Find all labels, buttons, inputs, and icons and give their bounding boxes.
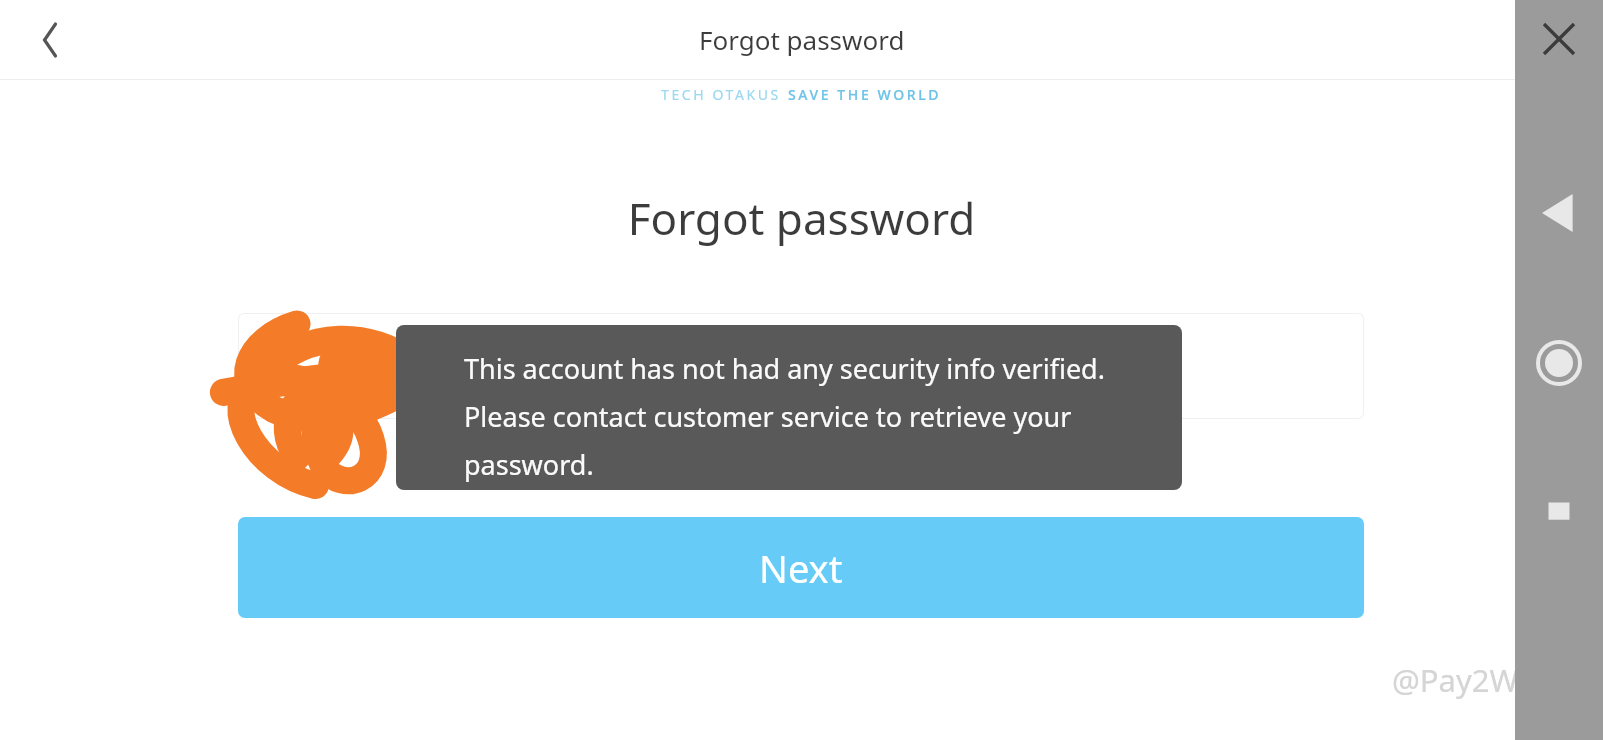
button[interactable]: Recent apps xyxy=(1528,482,1590,544)
staticText: Forgot password xyxy=(0,188,1603,248)
button[interactable]: Home xyxy=(1528,332,1590,394)
button[interactable]: Close xyxy=(1528,8,1590,70)
staticText: TECH OTAKUS xyxy=(661,85,788,104)
button[interactable]: Next xyxy=(238,517,1364,618)
staticText: Forgot password xyxy=(699,22,905,57)
staticText: This account has not had any security in… xyxy=(464,350,1105,387)
button[interactable] xyxy=(238,313,1364,419)
staticText: Next xyxy=(759,542,843,594)
button[interactable]: Back xyxy=(1528,182,1590,244)
staticText: password. xyxy=(464,446,594,483)
staticText: Please contact customer service to retri… xyxy=(464,398,1072,435)
staticText: @Pay2WinBS xyxy=(1392,659,1583,701)
button[interactable]: Back xyxy=(18,8,82,72)
staticText: SAVE THE WORLD xyxy=(788,85,942,104)
